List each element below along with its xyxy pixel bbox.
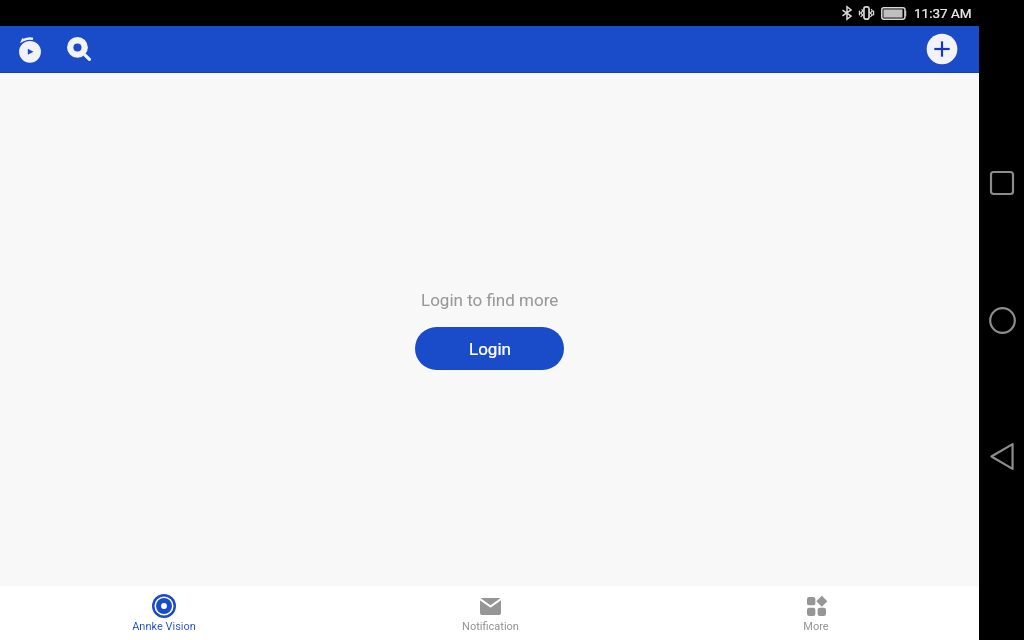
- button[interactable]: Login: [415, 327, 564, 370]
- staticText: Notification: [462, 620, 519, 633]
- staticText: 11:37 AM: [914, 5, 972, 21]
- button[interactable]: Playback: [12, 31, 48, 67]
- button[interactable]: Recents: [982, 163, 1022, 203]
- staticText: Annke Vision: [132, 620, 196, 633]
- staticText: Login: [469, 339, 511, 359]
- button[interactable]: More: [653, 586, 979, 640]
- button[interactable]: Notification: [327, 586, 653, 640]
- staticText: Login to find more: [421, 290, 559, 310]
- button[interactable]: Annke Vision: [0, 586, 327, 640]
- button[interactable]: Back: [982, 436, 1022, 476]
- button[interactable]: Home: [982, 300, 1022, 340]
- button[interactable]: Search: [61, 31, 97, 67]
- staticText: More: [803, 620, 829, 633]
- button[interactable]: Add device: [924, 31, 960, 67]
